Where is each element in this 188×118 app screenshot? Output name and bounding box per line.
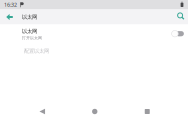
button[interactable]: Home (84, 104, 106, 118)
button[interactable]: Back (2, 9, 17, 24)
button[interactable]: Recents (136, 104, 158, 118)
button[interactable]: Search (174, 10, 188, 24)
button[interactable]: 配置以太网 (0, 42, 188, 57)
staticText: 以太网 (22, 28, 37, 34)
staticText: 16:32 (4, 1, 17, 8)
button[interactable]: Back (31, 104, 53, 118)
button[interactable]: 以太网 (0, 24, 188, 42)
staticText: 配置以太网 (24, 48, 49, 54)
staticText: 以太网 (22, 14, 37, 20)
staticText: 打开以太网 (22, 35, 42, 40)
